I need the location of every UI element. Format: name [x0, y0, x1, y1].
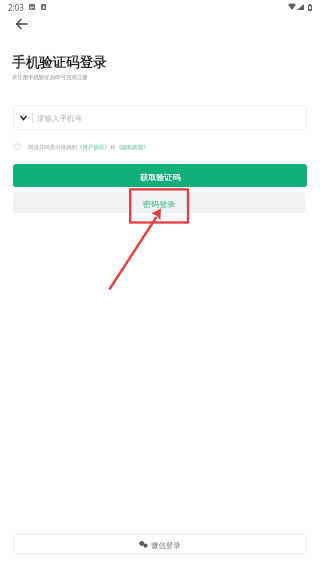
button[interactable]: 《用户协议》 — [77, 144, 110, 151]
staticText: 未注册手机验证后即可完成注册 — [12, 74, 88, 81]
staticText: 2:03 — [8, 2, 24, 13]
staticText: 阅读并同意出境易的 — [28, 144, 77, 151]
staticText: 微信登录 — [151, 541, 181, 550]
staticText: 请输入手机号 — [37, 114, 82, 123]
button[interactable]: Back — [7, 10, 35, 38]
staticText: 密码登录 — [143, 199, 176, 209]
button[interactable]: 密码登录 — [13, 192, 305, 213]
button[interactable]: 《隐私政策》 — [116, 144, 149, 151]
button[interactable]: 请输入手机号 — [13, 105, 307, 130]
staticText: 获取验证码 — [140, 172, 181, 182]
button[interactable]: 阅读并同意出境易的 — [13, 141, 149, 153]
button[interactable]: 微信登录 — [13, 534, 307, 554]
button[interactable]: 获取验证码 — [13, 164, 307, 187]
staticText: 手机验证码登录 — [12, 54, 107, 71]
staticText: 和 — [110, 144, 116, 151]
